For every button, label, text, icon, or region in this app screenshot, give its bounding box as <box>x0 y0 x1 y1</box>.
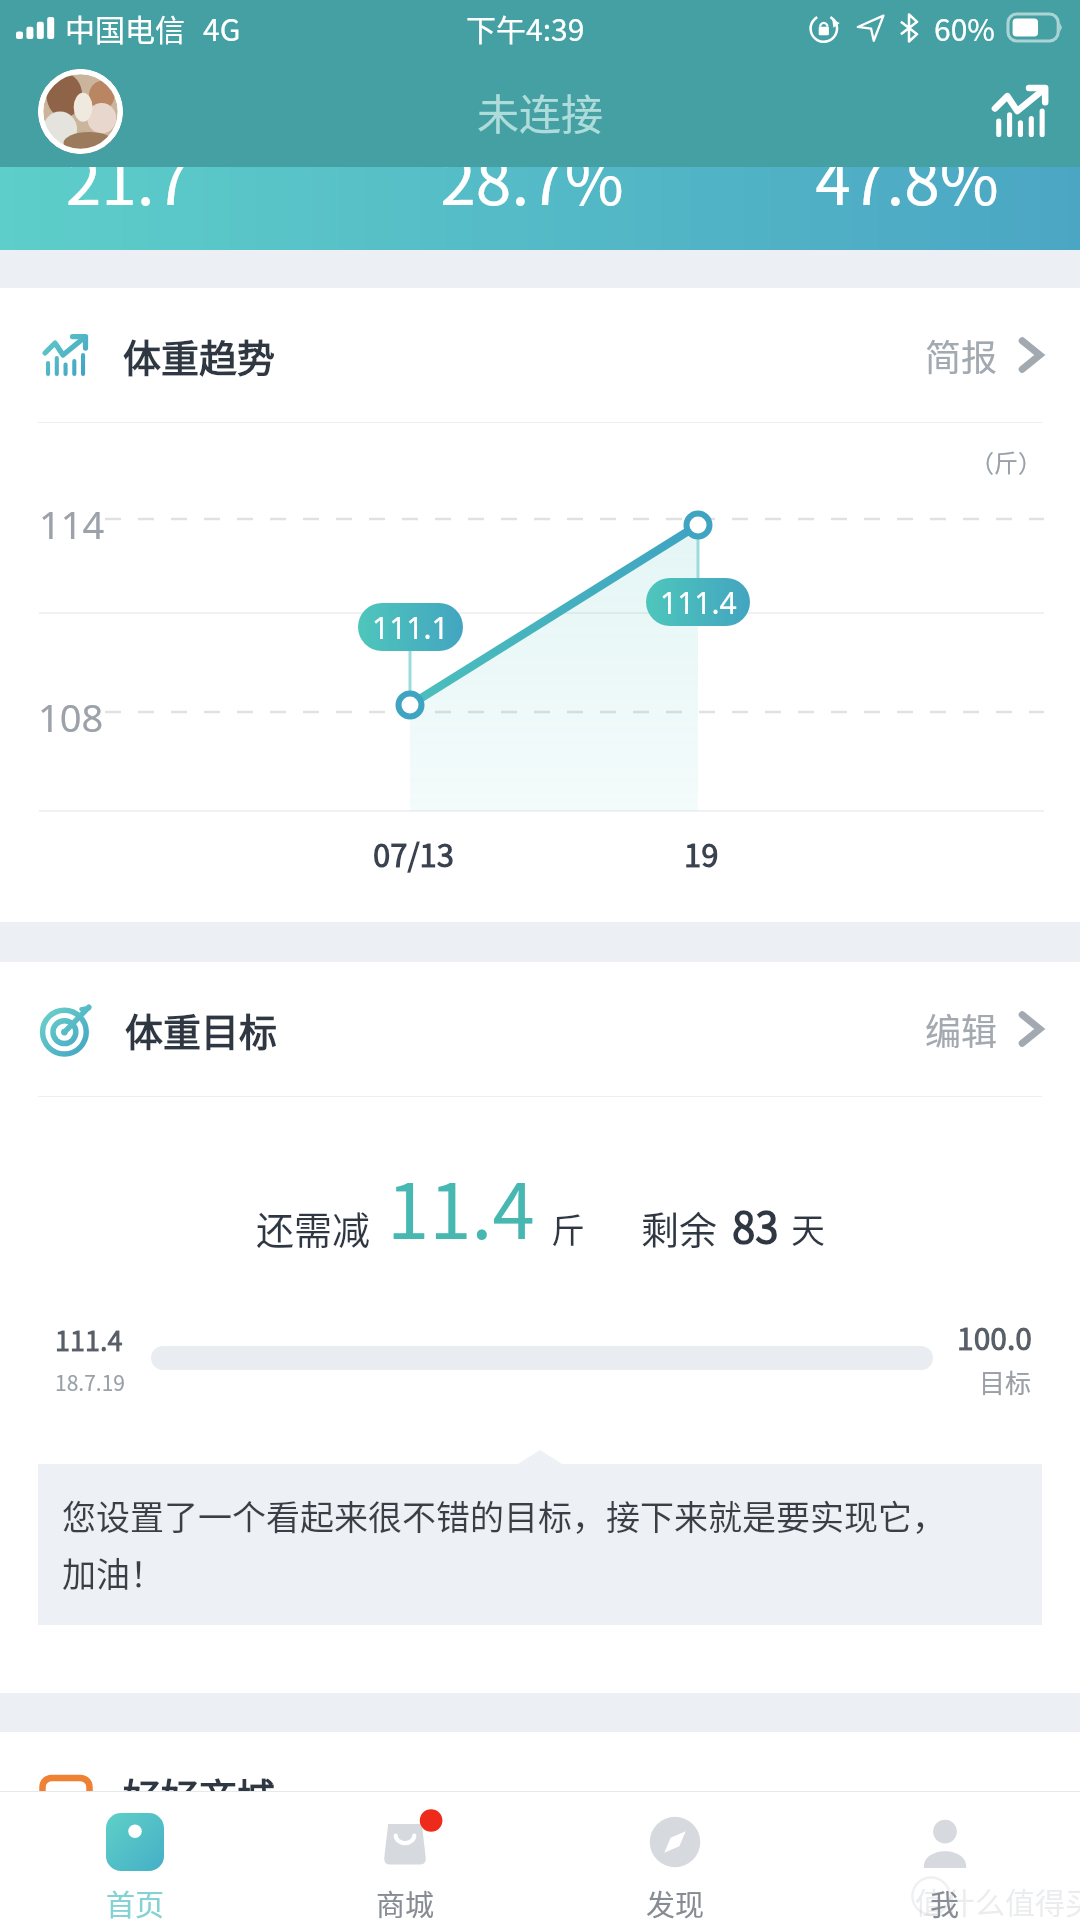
staticText: （斤） <box>970 444 1042 479</box>
staticText: 体重目标 <box>125 1002 278 1057</box>
staticText: 11.4 <box>387 1151 535 1261</box>
staticText: 您设置了一个看起来很不错的目标，接下来就是要实现它， 加油！ <box>62 1491 946 1597</box>
staticText: 目标 <box>979 1363 1032 1401</box>
staticText: 下午4:39 <box>466 6 585 49</box>
staticText: 114 <box>39 498 105 550</box>
staticText: 未连接 <box>477 81 604 142</box>
staticText: 商城 <box>376 1882 435 1920</box>
staticText: 首页 <box>106 1882 165 1920</box>
staticText: 简报 <box>925 329 998 381</box>
staticText: 07/13 <box>373 831 454 876</box>
staticText: 100.0 <box>957 1315 1032 1358</box>
staticText: 111.1 <box>372 607 449 648</box>
staticText: 108 <box>38 691 104 743</box>
staticText: 111.4 <box>660 582 737 623</box>
button[interactable]: 我 <box>810 1792 1080 1920</box>
button[interactable]: Trends <box>990 80 1052 142</box>
button[interactable]: 体重趋势 <box>0 288 1080 422</box>
staticText: 83 <box>732 1194 779 1255</box>
button[interactable]: 商城 <box>270 1792 540 1920</box>
button[interactable]: 好好商城 <box>0 1767 1080 1822</box>
staticText: 剩余 <box>641 1200 718 1255</box>
staticText: 好好商城 <box>123 1767 276 1822</box>
staticText: 19 <box>684 831 719 876</box>
staticText: 斤 <box>551 1204 585 1253</box>
staticText: 值什么值得买 <box>915 1879 1080 1920</box>
staticText: 47.8% <box>807 131 1007 224</box>
staticText: 发现 <box>646 1882 705 1920</box>
staticText: 体重趋势 <box>123 328 276 383</box>
staticText: 天 <box>791 1204 825 1253</box>
button[interactable]: 发现 <box>540 1792 810 1920</box>
staticText: 18.7.19 <box>55 1367 125 1397</box>
staticText: 编辑 <box>925 1003 998 1055</box>
staticText: 我 <box>930 1882 960 1920</box>
button[interactable]: Profile <box>38 69 123 154</box>
staticText: 21.7 <box>28 131 228 224</box>
staticText: 111.4 <box>55 1320 123 1359</box>
staticText: 4G <box>203 6 241 49</box>
staticText: 还需减 <box>256 1200 371 1255</box>
staticText: 28.7% <box>432 131 632 224</box>
button[interactable]: 首页 <box>0 1792 270 1920</box>
button[interactable]: 体重目标 <box>0 962 1080 1096</box>
staticText: 60% <box>934 6 995 49</box>
staticText: 中国电信 <box>65 6 185 49</box>
